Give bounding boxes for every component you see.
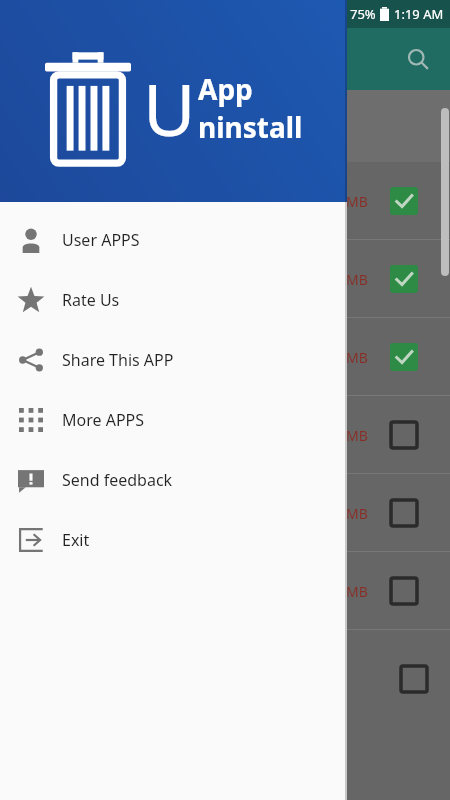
button[interactable]: Send feedback [0, 450, 347, 510]
staticText: 1:19 AM [394, 5, 444, 23]
button[interactable]: Share This APP [0, 330, 347, 390]
staticText: Share This APP [62, 349, 174, 371]
staticText: ninstall [198, 108, 303, 146]
button[interactable]: Search [394, 35, 442, 83]
button[interactable]: MB [0, 474, 450, 552]
button[interactable]: MB [0, 240, 450, 318]
staticText: 75% [350, 5, 376, 23]
staticText: MB [346, 426, 368, 445]
button[interactable]: MB [0, 318, 450, 396]
button[interactable]: Rate Us [0, 270, 347, 330]
button[interactable]: MB [0, 396, 450, 474]
staticText: MB [346, 504, 368, 523]
staticText: User APPS [62, 229, 140, 251]
button[interactable]: Exit [0, 510, 347, 570]
staticText: Exit [62, 529, 90, 551]
staticText: Rate Us [62, 289, 120, 311]
staticText: Counter Strike [12, 96, 114, 116]
staticText: MB [346, 348, 368, 367]
button[interactable]: UNINSTALL [10, 122, 105, 150]
button[interactable]: User APPS [0, 210, 347, 270]
staticText: More APPS [62, 409, 145, 431]
staticText: U [143, 59, 196, 157]
button[interactable]: MB [0, 552, 450, 630]
staticText: App [198, 70, 253, 108]
staticText: Send feedback [62, 469, 173, 491]
button[interactable]: MB [0, 162, 450, 240]
staticText: MB [346, 192, 368, 211]
staticText: UNINSTALL [22, 127, 93, 145]
staticText: MB [346, 270, 368, 289]
staticText: MB [346, 582, 368, 601]
button[interactable]: More APPS [0, 390, 347, 450]
